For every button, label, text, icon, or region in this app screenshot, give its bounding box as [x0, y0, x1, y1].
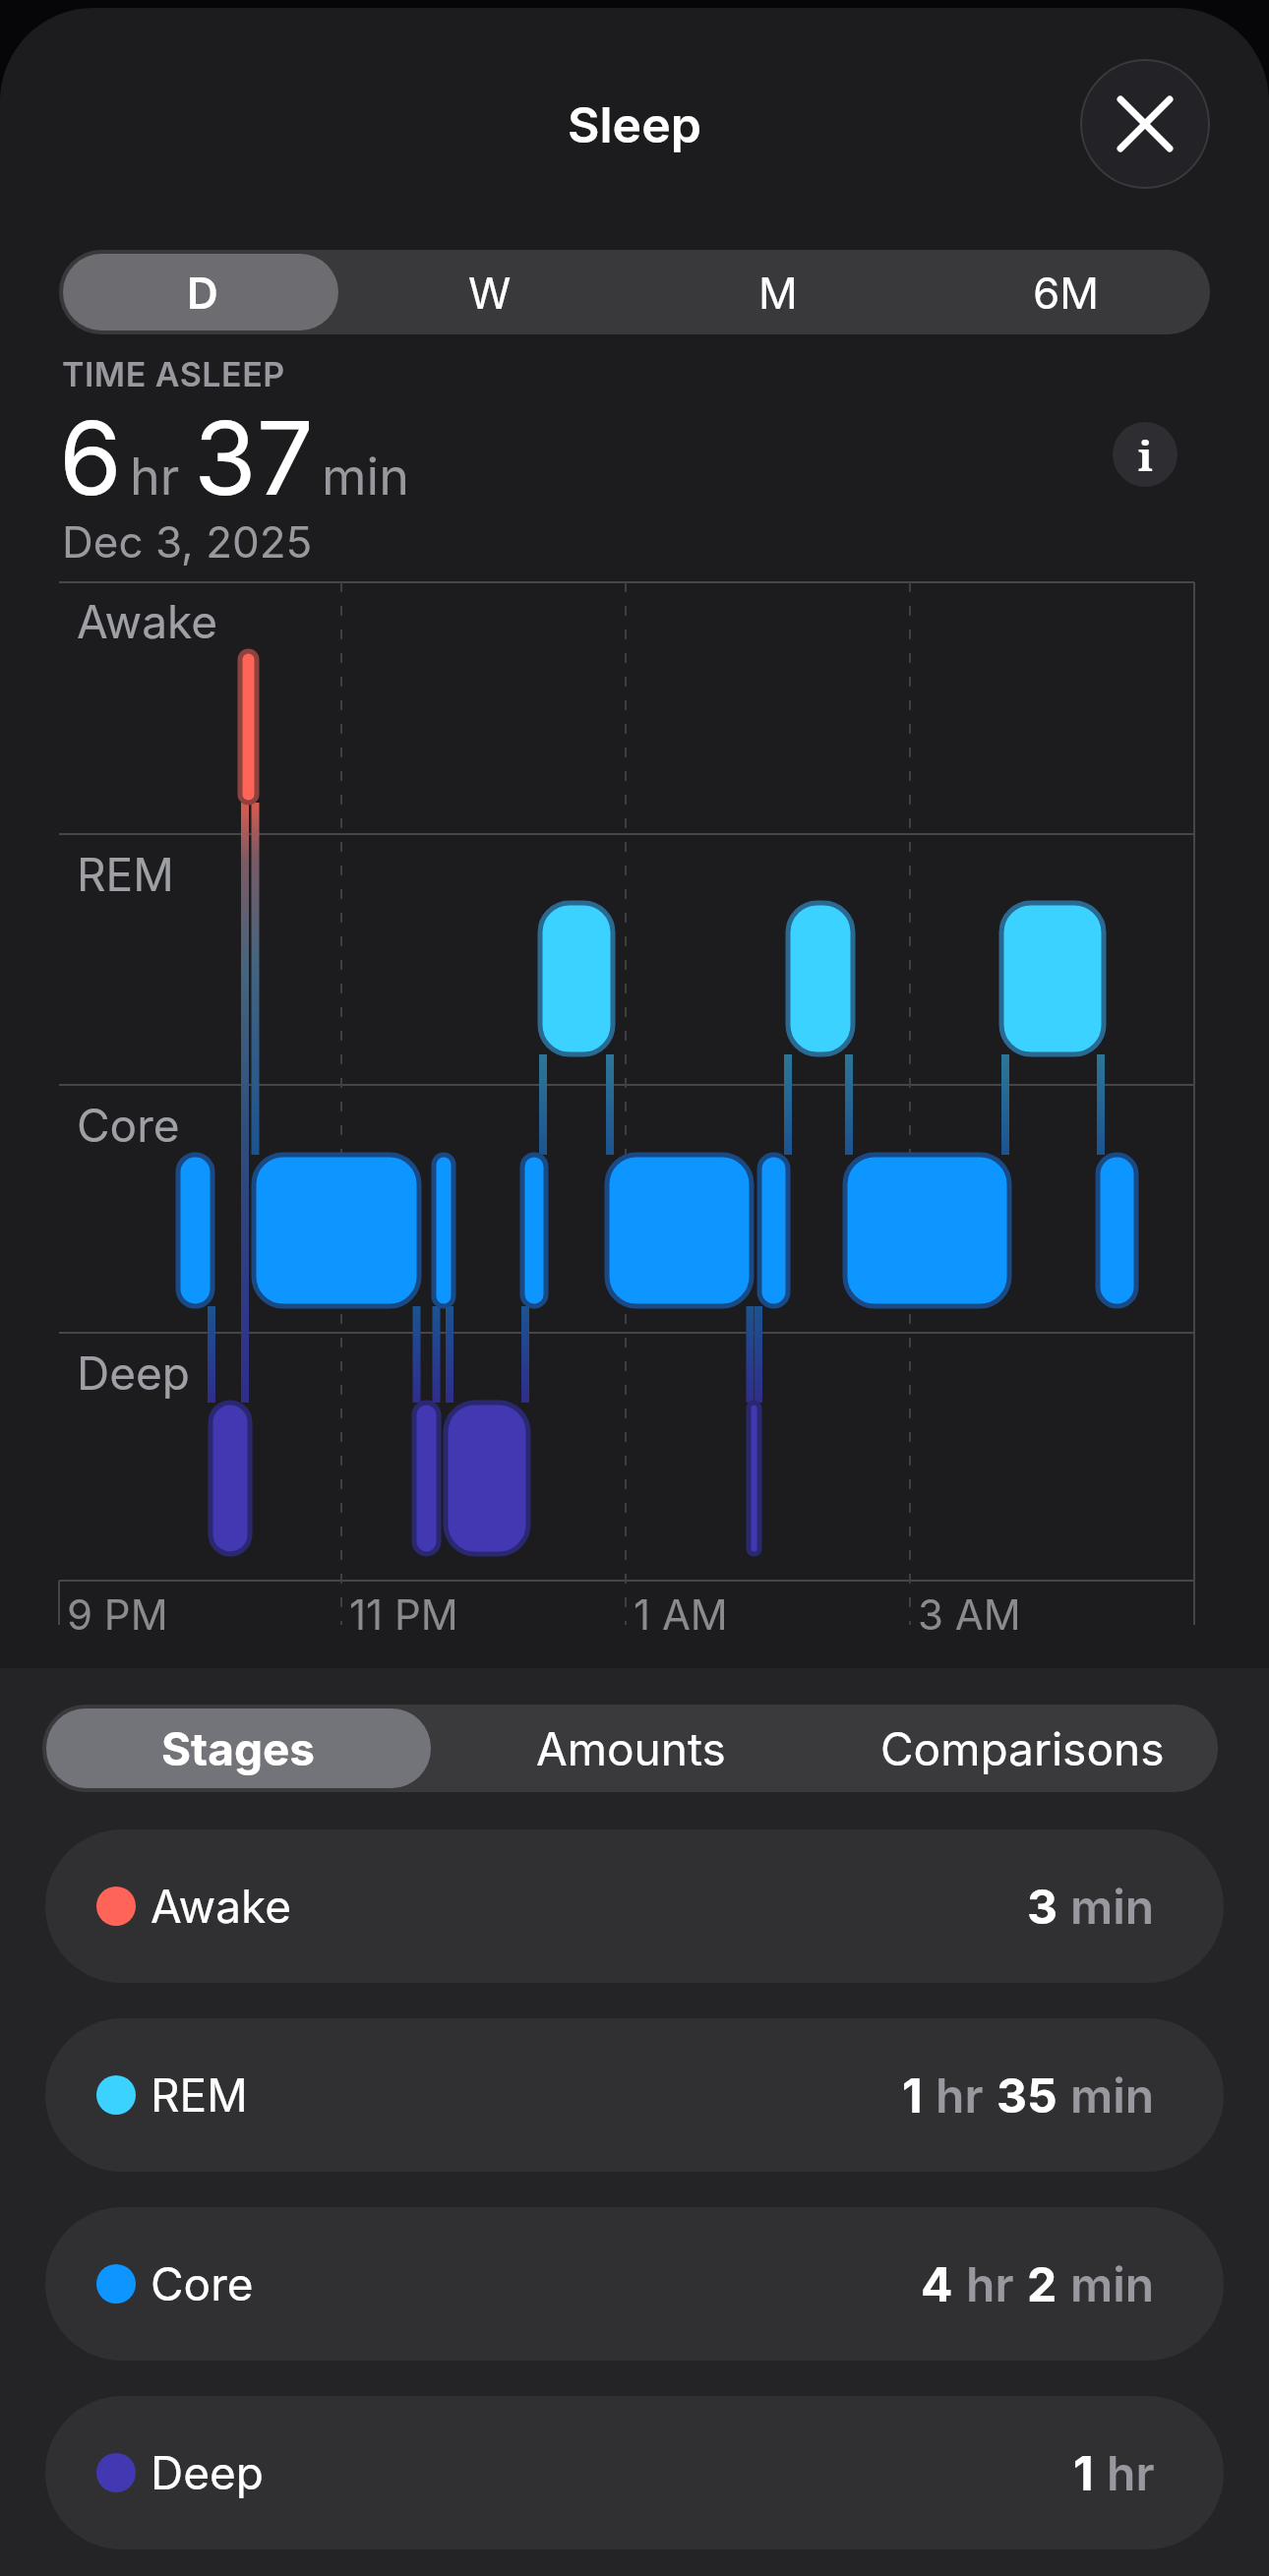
button[interactable]: i: [1113, 422, 1178, 487]
staticText: 37: [194, 396, 314, 519]
staticText: W: [468, 267, 512, 319]
staticText: Comparisons: [880, 1721, 1165, 1776]
staticText: Awake: [77, 594, 218, 649]
staticText: Dec 3, 2025: [62, 515, 313, 568]
staticText: Amounts: [536, 1721, 726, 1776]
staticText: Core: [77, 1098, 180, 1153]
staticText: 3 AM: [918, 1589, 1021, 1640]
button[interactable]: W: [346, 250, 634, 334]
staticText: Awake: [151, 1879, 292, 1934]
staticText: REM: [77, 847, 174, 902]
staticText: REM: [151, 2067, 248, 2123]
staticText: 1: [1073, 2444, 1094, 2501]
button[interactable]: M: [634, 250, 922, 334]
staticText: 6: [59, 396, 122, 519]
staticText: i: [1138, 427, 1153, 483]
staticText: min: [1070, 1878, 1155, 1935]
staticText: Deep: [77, 1346, 190, 1401]
button[interactable]: REM: [45, 2018, 1224, 2172]
staticText: 9 PM: [67, 1589, 168, 1640]
button[interactable]: Stages: [42, 1705, 435, 1792]
staticText: Core: [151, 2256, 254, 2311]
staticText: D: [187, 267, 218, 319]
button[interactable]: Deep: [45, 2396, 1224, 2549]
button[interactable]: D: [59, 250, 346, 334]
button[interactable]: Comparisons: [826, 1705, 1218, 1792]
staticText: 6M: [1033, 267, 1100, 319]
button[interactable]: Amounts: [435, 1705, 826, 1792]
button[interactable]: Core: [45, 2207, 1224, 2361]
staticText: Sleep: [568, 95, 701, 154]
button[interactable]: [1080, 59, 1210, 189]
staticText: hr: [130, 446, 180, 508]
staticText: hr: [1107, 2444, 1155, 2501]
staticText: hr: [936, 2067, 984, 2124]
staticText: min: [322, 446, 409, 508]
button[interactable]: 6M: [922, 250, 1210, 334]
staticText: 1: [902, 2067, 923, 2124]
staticText: 3: [1027, 1878, 1057, 1935]
staticText: 4: [921, 2255, 953, 2312]
staticText: 11 PM: [349, 1589, 458, 1640]
staticText: hr: [966, 2255, 1014, 2312]
staticText: min: [1070, 2067, 1155, 2124]
staticText: 2: [1027, 2255, 1057, 2312]
button[interactable]: Awake: [45, 1829, 1224, 1983]
staticText: 35: [997, 2067, 1057, 2124]
staticText: M: [758, 267, 798, 319]
staticText: Deep: [151, 2445, 264, 2500]
staticText: Stages: [161, 1721, 316, 1776]
staticText: 1 AM: [634, 1589, 728, 1640]
staticText: TIME ASLEEP: [62, 354, 285, 394]
staticText: min: [1070, 2255, 1155, 2312]
